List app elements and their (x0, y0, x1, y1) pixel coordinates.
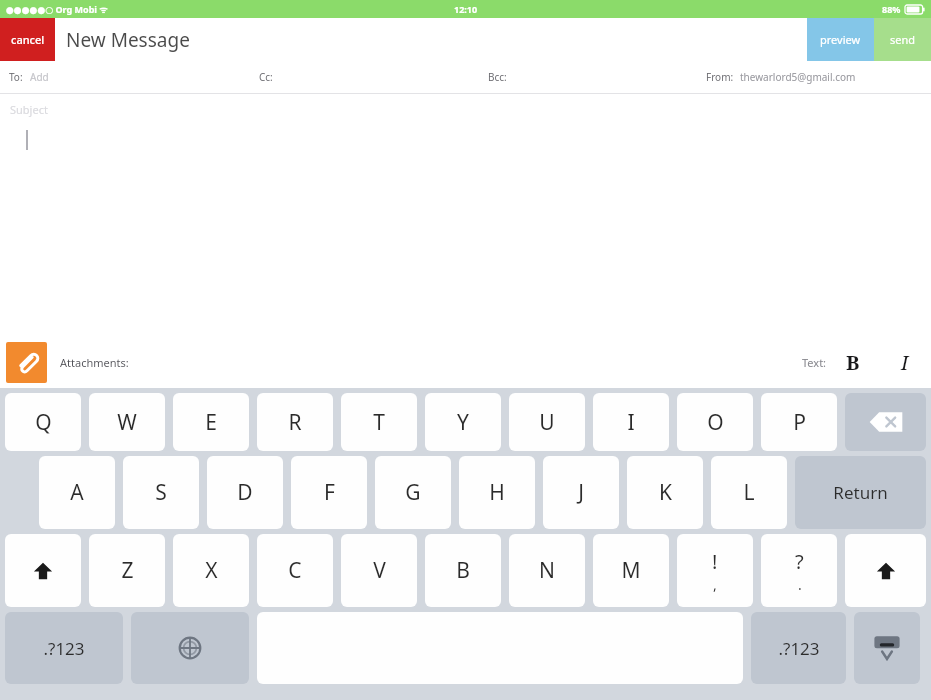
staticText: K (659, 478, 672, 507)
button[interactable]: K (627, 456, 703, 529)
button[interactable]: S (123, 456, 199, 529)
button[interactable]: To: (0, 61, 931, 93)
staticText: H (489, 478, 505, 507)
button[interactable]: L (711, 456, 787, 529)
staticText: C (288, 556, 302, 585)
staticText: W (117, 408, 137, 437)
button[interactable]: A (39, 456, 115, 529)
staticText: J (578, 478, 584, 507)
button[interactable]: .?123 (5, 612, 123, 684)
staticText: Return (833, 481, 888, 504)
staticText: Q (35, 408, 52, 437)
staticText: L (743, 478, 755, 507)
button[interactable]: U (509, 393, 585, 451)
button[interactable]: Shift (845, 534, 926, 607)
button[interactable]: Return (795, 456, 926, 529)
button[interactable]: B (425, 534, 501, 607)
button[interactable]: preview (807, 18, 874, 61)
staticText: .?123 (43, 637, 85, 660)
staticText: cancel (11, 32, 45, 47)
staticText: send (890, 32, 916, 47)
staticText: From: (706, 70, 734, 84)
staticText: O (707, 408, 724, 437)
staticText: To: (9, 70, 23, 84)
button[interactable]: I (593, 393, 669, 451)
staticText: B (456, 556, 470, 585)
staticText: Text: (802, 355, 827, 370)
staticText: Add (30, 70, 49, 84)
staticText: . (798, 575, 802, 594)
button[interactable]: P (761, 393, 837, 451)
button[interactable]: F (291, 456, 367, 529)
button[interactable]: Attachments: (60, 355, 129, 370)
button[interactable]: Y (425, 393, 501, 451)
staticText: ? (795, 548, 804, 575)
button[interactable]: X (173, 534, 249, 607)
staticText: ●●●●●○ Org Mobi ᯤ (6, 3, 108, 15)
button[interactable]: R (257, 393, 333, 451)
button[interactable]: D (207, 456, 283, 529)
staticText: A (70, 478, 84, 507)
button[interactable]: ? (761, 534, 837, 607)
button[interactable]: T (341, 393, 417, 451)
button[interactable]: Change keyboard language (131, 612, 249, 684)
staticText: I (627, 408, 635, 437)
button[interactable]: Z (89, 534, 165, 607)
button[interactable]: cancel (0, 18, 55, 61)
staticText: U (539, 408, 555, 437)
button[interactable]: ! (677, 534, 753, 607)
button[interactable]: Shift (5, 534, 81, 607)
staticText: P (793, 408, 806, 437)
staticText: E (205, 408, 217, 437)
staticText: M (621, 556, 641, 585)
staticText: B (846, 349, 860, 376)
staticText: D (237, 478, 253, 507)
staticText: Subject (10, 102, 48, 117)
button[interactable]: C (257, 534, 333, 607)
button[interactable]: V (341, 534, 417, 607)
button[interactable]: send (874, 18, 931, 61)
staticText: Cc: (259, 70, 273, 84)
staticText: thewarlord5@gmail.com (740, 70, 856, 84)
staticText: 12:10 (454, 3, 478, 15)
staticText: F (324, 478, 335, 507)
staticText: N (539, 556, 555, 585)
button[interactable]: E (173, 393, 249, 451)
staticText: 88% (882, 3, 901, 15)
staticText: V (373, 556, 386, 585)
button[interactable]: I (879, 336, 931, 388)
staticText: T (373, 408, 385, 437)
button[interactable]: J (543, 456, 619, 529)
button[interactable]: Add attachment (6, 342, 47, 383)
button[interactable]: .?123 (751, 612, 846, 684)
staticText: ! (712, 548, 718, 575)
staticText: Y (457, 408, 469, 437)
staticText: G (405, 478, 421, 507)
button[interactable]: Hide keyboard (854, 612, 920, 684)
staticText: .?123 (778, 637, 820, 660)
button[interactable]: H (459, 456, 535, 529)
button[interactable]: G (375, 456, 451, 529)
button[interactable]: M (593, 534, 669, 607)
button[interactable]: New Message (55, 18, 807, 61)
staticText: , (713, 575, 717, 594)
button[interactable]: W (89, 393, 165, 451)
staticText: X (205, 556, 218, 585)
staticText: I (901, 349, 909, 376)
button[interactable]: O (677, 393, 753, 451)
staticText: S (155, 478, 167, 507)
staticText: preview (820, 32, 861, 47)
button[interactable]: Q (5, 393, 81, 451)
staticText: New Message (66, 27, 190, 53)
staticText: Z (121, 556, 134, 585)
staticText: Bcc: (488, 70, 507, 84)
button[interactable]: Backspace (845, 393, 926, 451)
button[interactable]: B (827, 336, 879, 388)
button[interactable]: N (509, 534, 585, 607)
staticText: R (288, 408, 302, 437)
